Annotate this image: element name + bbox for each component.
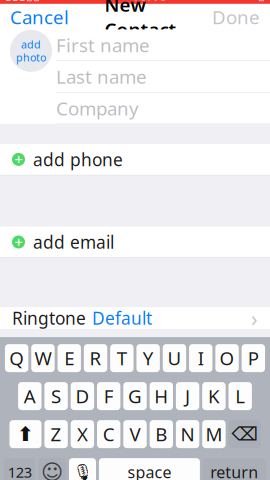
button[interactable]: L [228, 382, 252, 410]
staticText: T [117, 346, 127, 370]
staticText: Done [212, 4, 260, 29]
staticText: L [235, 384, 245, 408]
staticText: M [205, 422, 222, 446]
staticText: B [155, 422, 167, 446]
button[interactable]: M [202, 420, 226, 448]
button[interactable]: I [189, 344, 212, 372]
button[interactable]: X [71, 420, 94, 448]
staticText: I [198, 346, 204, 370]
staticText: C [103, 422, 115, 446]
staticText: ▮▮▮▯▯ EE ᯤ ↻ [5, 0, 92, 3]
staticText: F [104, 384, 114, 408]
button[interactable]: A [18, 382, 41, 410]
button[interactable]: P [242, 344, 265, 372]
button[interactable]: V [123, 420, 147, 448]
staticText: U [167, 346, 181, 370]
staticText: Ringtone [12, 307, 86, 330]
staticText: H [154, 384, 168, 408]
staticText: return [210, 461, 258, 480]
button[interactable]: Ringtone [0, 307, 270, 329]
staticText: add phone [33, 148, 123, 171]
button[interactable]: Y [136, 344, 160, 372]
button[interactable]: B [150, 420, 173, 448]
button[interactable]: add [10, 30, 52, 72]
staticText: New Contact [104, 0, 176, 42]
staticText: 10:18 [131, 0, 167, 5]
staticText: R [89, 346, 101, 370]
staticText: + [14, 150, 22, 169]
staticText: 🎙 [72, 463, 92, 480]
staticText: W [34, 346, 51, 370]
staticText: X [77, 422, 88, 446]
staticText: J [185, 384, 190, 408]
button[interactable]: H [150, 382, 173, 410]
button[interactable]: First name [0, 29, 270, 60]
button[interactable]: Dictation [69, 458, 96, 480]
button[interactable]: K [202, 382, 226, 410]
button[interactable]: R [84, 344, 107, 372]
button[interactable]: O [215, 344, 239, 372]
button[interactable]: Delete [228, 420, 260, 448]
staticText: P [248, 346, 259, 370]
button[interactable]: D [71, 382, 94, 410]
staticText: E [64, 346, 74, 370]
button[interactable]: N [176, 420, 199, 448]
button[interactable]: T [110, 344, 133, 372]
staticText: Cancel [10, 4, 69, 29]
button[interactable]: J [176, 382, 199, 410]
button[interactable]: G [123, 382, 147, 410]
staticText: Q [9, 346, 24, 370]
button[interactable]: U [163, 344, 186, 372]
staticText: First name [56, 33, 150, 57]
button[interactable]: Done [202, 0, 270, 35]
staticText: O [220, 346, 235, 370]
button[interactable]: + [0, 144, 270, 175]
staticText: S [51, 384, 61, 408]
staticText: Last name [56, 64, 147, 89]
button[interactable]: space [99, 458, 200, 480]
button[interactable]: S [44, 382, 68, 410]
staticText: Y [143, 346, 154, 370]
button[interactable]: Z [44, 420, 68, 448]
staticText: › [251, 304, 258, 332]
staticText: A [24, 384, 36, 408]
staticText: add email [33, 230, 114, 253]
staticText: Company [56, 96, 139, 121]
staticText: 123 [8, 462, 32, 480]
button[interactable]: C [97, 420, 120, 448]
staticText: Z [51, 422, 62, 446]
button[interactable]: F [97, 382, 120, 410]
staticText: V [129, 422, 140, 446]
staticText: ⌫ [231, 423, 257, 445]
button[interactable]: Shift [9, 420, 41, 448]
staticText: ⬆ [17, 423, 34, 445]
button[interactable]: Q [5, 344, 28, 372]
staticText: + [14, 232, 22, 252]
staticText: ☺ [41, 460, 63, 480]
button[interactable]: + [0, 226, 270, 257]
button[interactable]: Emoji [38, 458, 66, 480]
button[interactable]: Last name [0, 61, 270, 92]
button[interactable]: return [203, 458, 266, 480]
staticText: add [21, 37, 41, 51]
button[interactable]: W [31, 344, 55, 372]
staticText: Default [92, 307, 152, 330]
staticText: photo [16, 50, 46, 65]
button[interactable]: Company [0, 93, 270, 124]
staticText: space [127, 461, 171, 480]
staticText: D [75, 384, 89, 408]
staticText: K [208, 384, 220, 408]
staticText: G [128, 384, 142, 408]
staticText: N [181, 422, 195, 446]
button[interactable]: Cancel [0, 0, 79, 35]
button[interactable]: E [57, 344, 81, 372]
button[interactable]: 123 [4, 458, 35, 480]
staticText: ➤ 12% ▬▯ [206, 0, 265, 3]
